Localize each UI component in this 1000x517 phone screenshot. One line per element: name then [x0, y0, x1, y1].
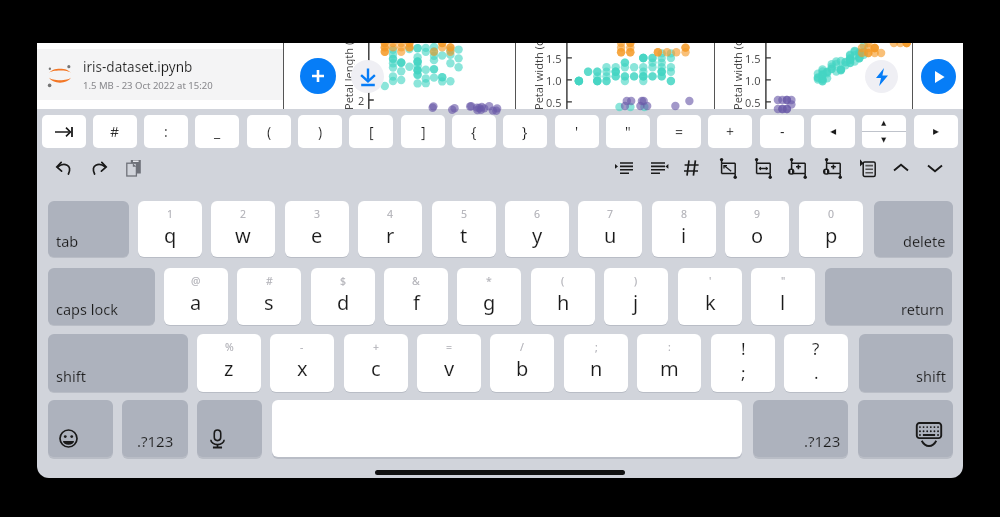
- staticText: [: [369, 122, 374, 141]
- staticText: a: [190, 289, 202, 316]
- button[interactable]: #: [237, 268, 301, 325]
- button[interactable]: ': [555, 115, 599, 148]
- button[interactable]: ◀: [811, 115, 855, 148]
- staticText: .?123: [804, 431, 841, 451]
- staticText: .?123: [137, 431, 174, 451]
- button[interactable]: Resize: [713, 153, 743, 183]
- button[interactable]: =: [417, 334, 481, 392]
- button[interactable]: =: [657, 115, 701, 148]
- button[interactable]: @: [164, 268, 228, 325]
- staticText: 2: [240, 207, 247, 221]
- staticText: ): [318, 122, 323, 141]
- button[interactable]: !: [711, 334, 775, 392]
- button[interactable]: Download: [351, 60, 384, 93]
- staticText: 0.5: [546, 95, 562, 110]
- staticText: 4: [387, 207, 394, 221]
- button[interactable]: _: [195, 115, 239, 148]
- staticText: Petal length (c: [341, 43, 355, 110]
- button[interactable]: %: [197, 334, 261, 392]
- button[interactable]: 8: [652, 201, 716, 257]
- staticText: 5: [461, 207, 468, 221]
- button[interactable]: Notes: [853, 153, 883, 183]
- button[interactable]: Add cell: [300, 58, 336, 94]
- button[interactable]: Width: [748, 153, 778, 183]
- button[interactable]: (: [531, 268, 595, 325]
- button[interactable]: Previous: [886, 153, 916, 183]
- button[interactable]: ": [751, 268, 815, 325]
- button[interactable]: iris-dataset.ipynb: [37, 49, 284, 100]
- button[interactable]: Insert below: [818, 153, 848, 183]
- staticText: shift: [916, 366, 946, 386]
- button[interactable]: $: [311, 268, 375, 325]
- button[interactable]: ?: [784, 334, 848, 392]
- button[interactable]: ": [606, 115, 650, 148]
- button[interactable]: Run all: [921, 59, 956, 94]
- button[interactable]: -: [760, 115, 804, 148]
- button[interactable]: ': [678, 268, 742, 325]
- button[interactable]: [197, 400, 262, 457]
- button[interactable]: 7: [578, 201, 642, 257]
- staticText: .: [814, 361, 819, 384]
- button[interactable]: ]: [401, 115, 445, 148]
- staticText: iris-dataset.ipynb: [83, 58, 193, 76]
- button[interactable]: +: [708, 115, 752, 148]
- button[interactable]: +: [344, 334, 408, 392]
- staticText: ▲: [881, 119, 887, 127]
- button[interactable]: [858, 400, 953, 457]
- button[interactable]: (: [247, 115, 291, 148]
- button[interactable]: [: [349, 115, 393, 148]
- staticText: 2: [358, 93, 365, 108]
- button[interactable]: 4: [358, 201, 422, 257]
- staticText: ▶: [933, 127, 940, 136]
- button[interactable]: Redo: [84, 153, 114, 183]
- button[interactable]: Insert above: [783, 153, 813, 183]
- button[interactable]: -: [270, 334, 334, 392]
- button[interactable]: Run: [865, 60, 898, 93]
- button[interactable]: Next: [920, 153, 950, 183]
- staticText: &: [412, 274, 420, 288]
- button[interactable]: 0: [799, 201, 863, 257]
- button[interactable]: Outdent: [644, 153, 674, 183]
- button[interactable]: tab: [48, 201, 129, 257]
- staticText: Petal width (c: [531, 43, 545, 110]
- button[interactable]: ): [604, 268, 668, 325]
- button[interactable]: shift: [48, 334, 188, 392]
- staticText: }: [522, 122, 528, 141]
- button[interactable]: return: [825, 268, 952, 325]
- button[interactable]: &: [384, 268, 448, 325]
- button[interactable]: :: [637, 334, 701, 392]
- button[interactable]: .?123: [122, 400, 188, 457]
- button[interactable]: Comment: [678, 153, 708, 183]
- button[interactable]: caps lock: [48, 268, 155, 325]
- button[interactable]: Indent: [609, 153, 639, 183]
- button[interactable]: 3: [285, 201, 349, 257]
- button[interactable]: 5: [432, 201, 496, 257]
- button[interactable]: }: [503, 115, 547, 148]
- button[interactable]: 2: [211, 201, 275, 257]
- button[interactable]: {: [452, 115, 496, 148]
- button[interactable]: .?123: [753, 400, 848, 457]
- button[interactable]: Undo: [49, 153, 79, 183]
- button[interactable]: 1: [138, 201, 202, 257]
- staticText: u: [604, 222, 617, 249]
- button[interactable]: ▲: [862, 115, 906, 148]
- button[interactable]: ;: [564, 334, 628, 392]
- button[interactable]: :: [144, 115, 188, 148]
- staticText: q: [164, 222, 177, 249]
- button[interactable]: *: [457, 268, 521, 325]
- button[interactable]: 6: [505, 201, 569, 257]
- button[interactable]: ): [298, 115, 342, 148]
- button[interactable]: shift: [859, 334, 953, 392]
- button[interactable]: ▶: [914, 115, 958, 148]
- button[interactable]: delete: [874, 201, 953, 257]
- button[interactable]: /: [490, 334, 554, 392]
- button[interactable]: 9: [725, 201, 789, 257]
- button[interactable]: [42, 115, 86, 148]
- staticText: f: [413, 289, 420, 316]
- staticText: t: [460, 222, 468, 249]
- button[interactable]: Copy: [119, 153, 149, 183]
- staticText: 1.0: [546, 73, 562, 88]
- button[interactable]: [48, 400, 113, 457]
- button[interactable]: #: [93, 115, 137, 148]
